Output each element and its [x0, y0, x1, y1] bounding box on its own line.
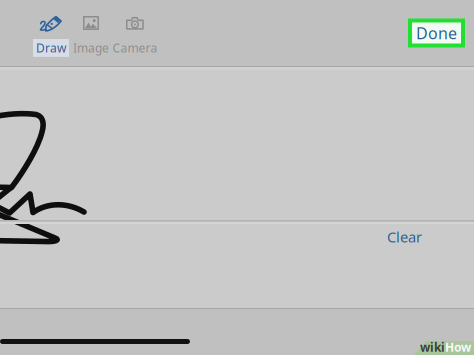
staticText: wiki: [420, 339, 445, 355]
staticText: Camera: [112, 40, 157, 56]
staticText: Image: [73, 40, 109, 56]
staticText: Done: [416, 22, 457, 44]
button[interactable]: Image: [71, 0, 111, 66]
staticText: How: [445, 339, 471, 355]
staticText: Draw: [36, 40, 66, 56]
staticText: Clear: [387, 227, 422, 246]
button[interactable]: Done: [408, 18, 465, 47]
button[interactable]: Camera: [111, 0, 159, 66]
button[interactable]: Clear: [379, 223, 430, 250]
button[interactable]: Draw: [31, 0, 71, 66]
